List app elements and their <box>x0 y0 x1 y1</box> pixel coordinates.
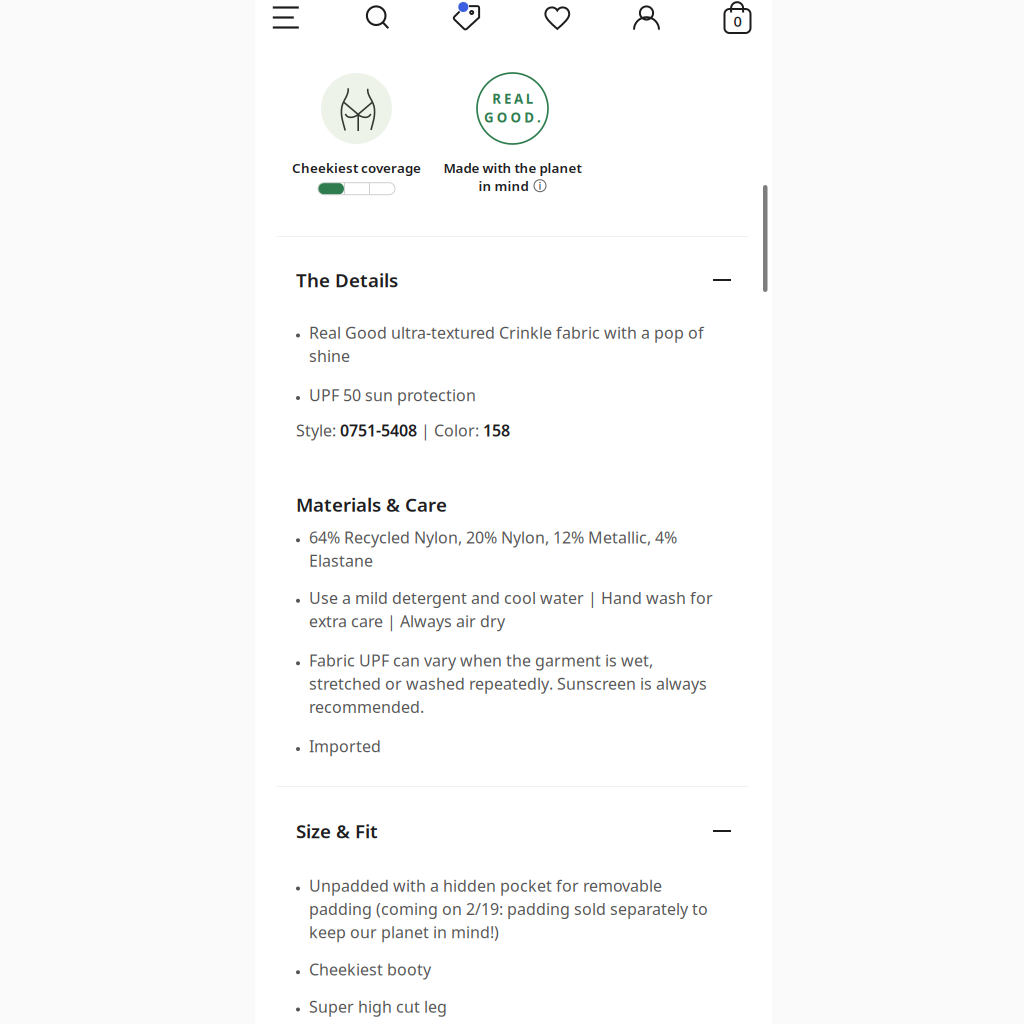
staticText: 0 <box>733 11 741 31</box>
staticText: L <box>526 90 533 107</box>
button[interactable]: Size & Fit <box>296 814 731 848</box>
button[interactable]: in mind <box>478 179 546 193</box>
staticText: 0751-5408 <box>340 420 417 441</box>
staticText: Size & Fit <box>296 819 378 843</box>
staticText: in mind <box>478 177 528 195</box>
staticText: 64% Recycled Nylon, 20% Nylon, 12% Metal… <box>309 527 677 571</box>
staticText: O <box>510 108 521 126</box>
staticText: Made with the planet <box>443 159 581 177</box>
staticText: D <box>524 108 534 126</box>
button[interactable]: Bag <box>713 0 761 38</box>
staticText: . <box>537 108 541 126</box>
staticText: Super high cut leg <box>309 996 447 1017</box>
staticText: Real Good ultra-textured Crinkle fabric … <box>309 322 704 366</box>
staticText: Style: <box>296 420 340 441</box>
button[interactable]: Account <box>622 0 670 38</box>
staticText: UPF 50 sun protection <box>309 384 476 406</box>
button[interactable]: Offers <box>443 0 491 36</box>
staticText: O <box>497 108 508 126</box>
staticText: The Details <box>296 268 398 292</box>
staticText: Use a mild detergent and cool water | Ha… <box>309 587 713 632</box>
staticText: | <box>417 420 434 441</box>
staticText: G <box>484 108 494 126</box>
staticText: Unpadded with a hidden pocket for remova… <box>309 875 708 943</box>
staticText: E <box>504 90 511 107</box>
staticText: Imported <box>309 735 381 757</box>
button[interactable]: Search <box>353 0 401 37</box>
staticText: R <box>492 90 501 107</box>
staticText: i <box>538 179 541 193</box>
button[interactable]: Menu <box>262 0 310 37</box>
staticText: Materials & Care <box>296 492 447 517</box>
staticText: 158 <box>483 420 510 441</box>
staticText: Fabric UPF can vary when the garment is … <box>309 650 707 717</box>
staticText: Cheekiest booty <box>309 959 431 980</box>
staticText: A <box>514 90 523 107</box>
staticText: Color: <box>434 420 483 441</box>
button[interactable]: Wishlist <box>533 0 581 37</box>
staticText: Cheekiest coverage <box>292 159 421 177</box>
button[interactable]: The Details <box>296 263 731 297</box>
